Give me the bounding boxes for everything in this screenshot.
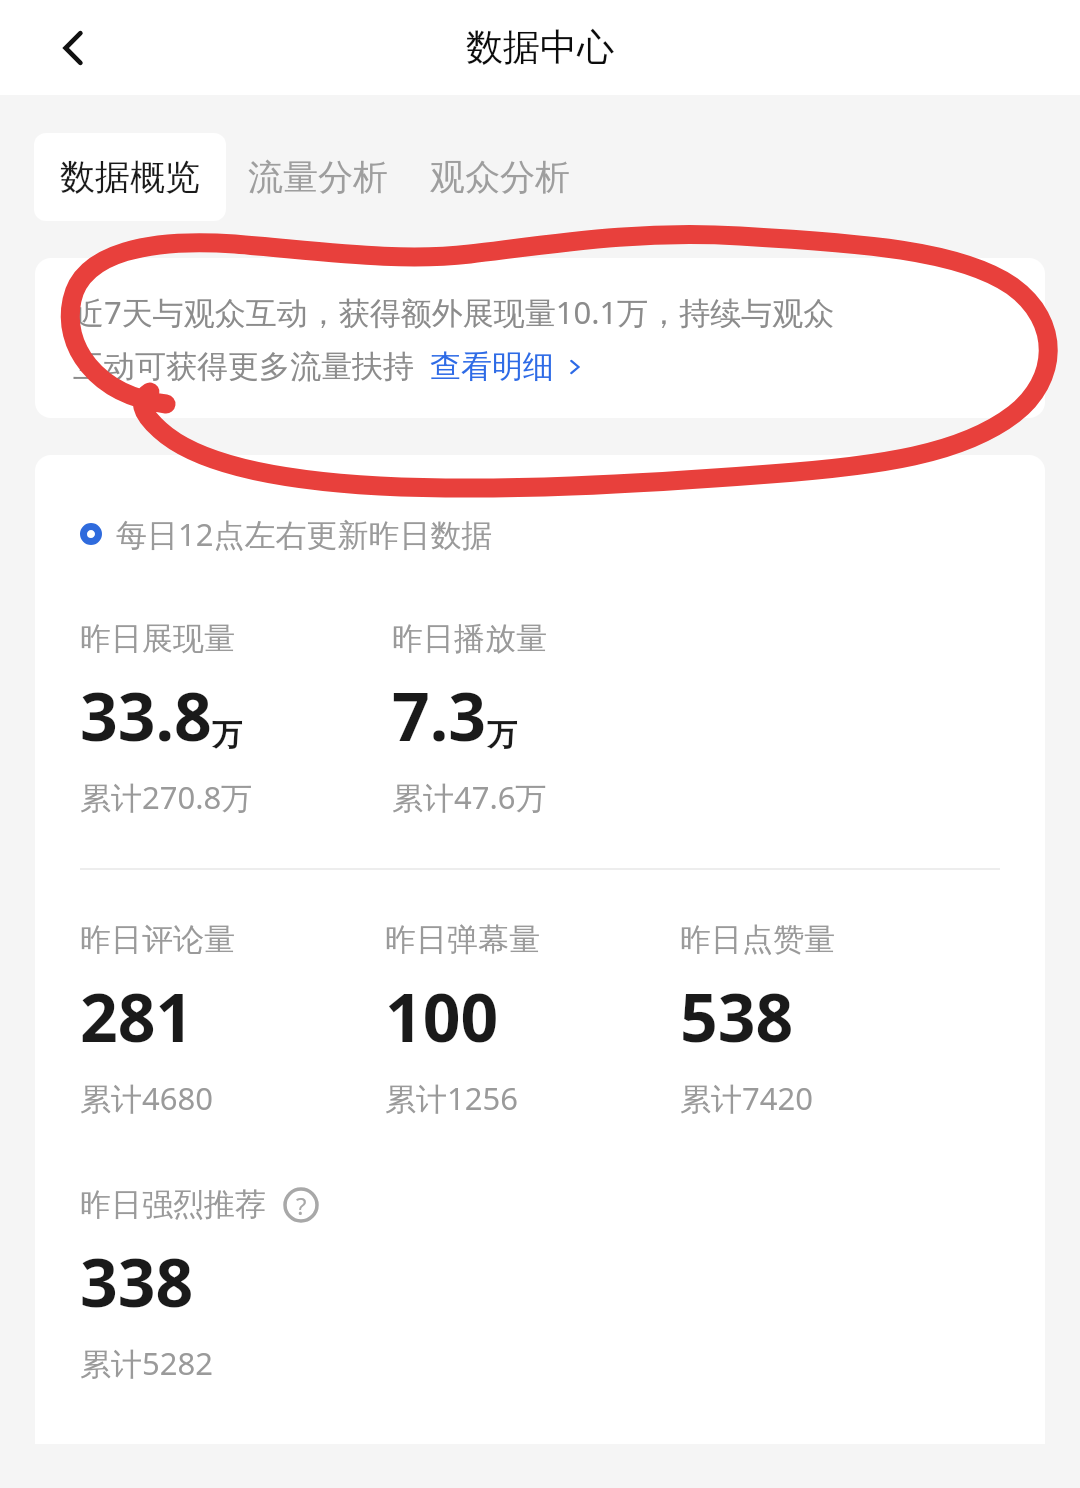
staticText: 数据概览 (60, 155, 200, 199)
staticText: 281 (80, 971, 194, 1061)
staticText: 累计4680 (80, 1077, 213, 1119)
staticText: 538 (680, 971, 794, 1061)
staticText: 累计270.8万 (80, 776, 253, 818)
staticText: 流量分析 (248, 155, 388, 199)
staticText: 昨日播放量 (392, 619, 547, 658)
button[interactable]: 流量分析 (226, 133, 410, 221)
staticText: 33.8 (80, 670, 212, 760)
button[interactable]: 近7天与观众互动，获得额外展现量10.1万，持续与观众 (35, 258, 1045, 418)
staticText: 互动可获得更多流量扶持 (73, 347, 414, 386)
staticText: 338 (80, 1236, 194, 1326)
staticText: 昨日评论量 (80, 920, 235, 959)
button[interactable]: 观众分析 (410, 133, 590, 221)
button[interactable]: Help (282, 1186, 320, 1224)
staticText: 昨日强烈推荐 (80, 1185, 266, 1224)
staticText: 数据中心 (466, 24, 614, 71)
staticText: 累计47.6万 (392, 776, 547, 818)
staticText: 查看明细 (430, 347, 554, 386)
staticText: 昨日弹幕量 (385, 920, 540, 959)
staticText: 7.3 (392, 670, 487, 760)
button[interactable]: Back (30, 4, 118, 92)
staticText: 观众分析 (430, 155, 570, 199)
staticText: 每日12点左右更新昨日数据 (116, 513, 493, 555)
staticText: 累计7420 (680, 1077, 813, 1119)
staticText: 累计1256 (385, 1077, 518, 1119)
button[interactable]: 数据概览 (34, 133, 226, 221)
staticText: 昨日展现量 (80, 619, 235, 658)
staticText: 累计5282 (80, 1342, 213, 1384)
staticText: 万 (212, 716, 242, 754)
staticText: 100 (385, 971, 499, 1061)
staticText: ? (296, 1189, 307, 1222)
staticText: 昨日点赞量 (680, 920, 835, 959)
staticText: 万 (487, 716, 517, 754)
staticText: 近7天与观众互动，获得额外展现量10.1万，持续与观众 (73, 291, 835, 333)
